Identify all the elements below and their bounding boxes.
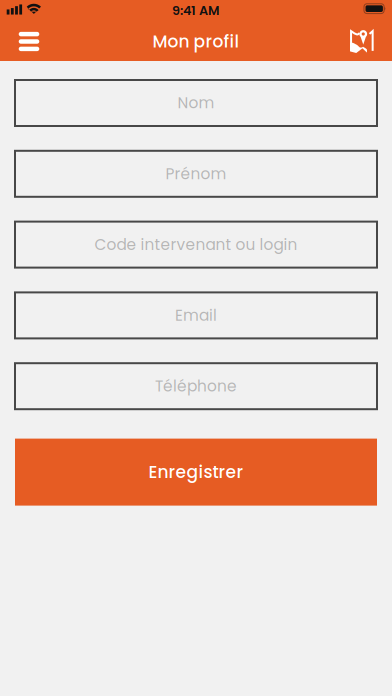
staticText: Téléphone [155,375,237,397]
staticText: Prénom [165,163,226,185]
staticText: Email [175,305,217,326]
staticText: Code intervenant ou login [94,234,297,255]
button[interactable]: Map [342,22,382,61]
staticText: Enregistrer [148,460,243,484]
staticText: 9:41 AM [172,1,220,19]
staticText: Nom [177,92,214,114]
button[interactable]: Menu [9,22,49,61]
button[interactable]: Enregistrer [15,439,377,506]
staticText: Mon profil [152,30,239,53]
